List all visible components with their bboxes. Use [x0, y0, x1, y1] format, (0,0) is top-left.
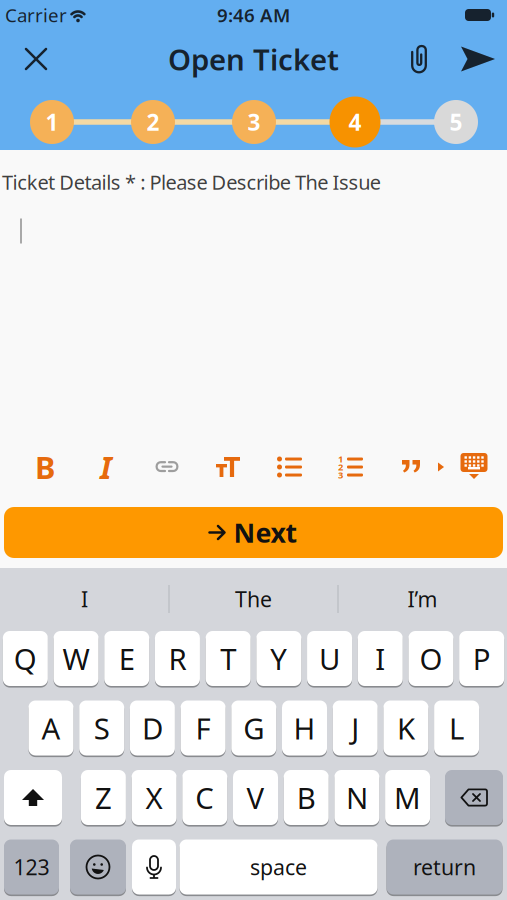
button[interactable]: I: [4, 576, 164, 622]
staticText: Z: [95, 778, 112, 817]
button[interactable]: The: [173, 576, 333, 622]
button[interactable]: Send: [456, 37, 500, 81]
staticText: T: [220, 639, 236, 678]
button[interactable]: Emoji: [70, 839, 126, 895]
staticText: C: [195, 778, 214, 817]
button[interactable]: Attach file: [399, 37, 439, 81]
staticText: K: [397, 708, 415, 747]
staticText: I: [81, 585, 88, 613]
button[interactable]: Dictate: [132, 839, 176, 895]
button[interactable]: X: [132, 769, 177, 825]
button[interactable]: D: [130, 700, 175, 756]
staticText: A: [41, 708, 60, 747]
staticText: Open Ticket: [168, 39, 339, 78]
staticText: H: [293, 708, 315, 747]
button[interactable]: Q: [3, 630, 48, 686]
button[interactable]: O: [408, 630, 453, 686]
staticText: I: [100, 447, 112, 487]
staticText: V: [246, 778, 264, 817]
staticText: I’m: [407, 585, 437, 613]
staticText: S: [94, 708, 110, 747]
button[interactable]: C: [182, 769, 227, 825]
button[interactable]: Insert link: [145, 447, 189, 487]
staticText: B: [35, 447, 55, 487]
button[interactable]: G: [231, 700, 276, 756]
staticText: 3: [247, 107, 260, 137]
staticText: 2: [338, 461, 343, 473]
staticText: P: [473, 639, 491, 678]
staticText: 5: [449, 107, 462, 137]
staticText: Q: [14, 639, 37, 678]
button[interactable]: Delete: [445, 769, 503, 825]
staticText: 1: [338, 453, 343, 465]
staticText: E: [119, 639, 135, 678]
staticText: 123: [13, 853, 49, 881]
button[interactable]: I: [358, 630, 403, 686]
button[interactable]: J: [333, 700, 378, 756]
staticText: I: [375, 639, 385, 678]
staticText: 9:46 AM: [217, 3, 290, 27]
staticText: Ticket Details * : Please Describe The I…: [2, 169, 381, 195]
button[interactable]: Text size: [206, 447, 250, 487]
button[interactable]: N: [334, 769, 379, 825]
button[interactable]: Hide keyboard: [454, 446, 494, 486]
button[interactable]: L: [434, 700, 479, 756]
staticText: N: [346, 778, 368, 817]
button[interactable]: space: [179, 839, 377, 895]
staticText: return: [413, 853, 476, 881]
button[interactable]: A: [28, 700, 73, 756]
button[interactable]: Y: [256, 630, 301, 686]
button[interactable]: Numbers: [4, 839, 59, 895]
staticText: space: [250, 853, 307, 881]
button[interactable]: S: [79, 700, 124, 756]
staticText: R: [168, 639, 186, 678]
staticText: J: [351, 708, 359, 747]
staticText: U: [319, 639, 340, 678]
button[interactable]: Close: [14, 37, 58, 81]
button[interactable]: Block quote: [394, 447, 430, 487]
button[interactable]: Italic: [84, 447, 128, 487]
staticText: F: [196, 708, 211, 747]
staticText: 1: [45, 107, 58, 137]
staticText: Next: [233, 515, 297, 550]
staticText: Y: [270, 639, 287, 678]
staticText: X: [146, 778, 163, 817]
button[interactable]: V: [233, 769, 278, 825]
button[interactable]: F: [181, 700, 226, 756]
staticText: O: [419, 639, 442, 678]
button[interactable]: Z: [81, 769, 126, 825]
button[interactable]: return: [386, 839, 502, 895]
button[interactable]: I’m: [342, 576, 502, 622]
button[interactable]: H: [282, 700, 327, 756]
button[interactable]: W: [54, 630, 99, 686]
staticText: G: [243, 708, 264, 747]
button[interactable]: Bold: [23, 447, 67, 487]
staticText: The: [235, 585, 272, 613]
button[interactable]: P: [459, 630, 504, 686]
staticText: D: [142, 708, 163, 747]
button[interactable]: K: [383, 700, 428, 756]
button[interactable]: B: [284, 769, 329, 825]
button[interactable]: Bulleted list: [268, 447, 312, 487]
staticText: M: [394, 778, 421, 817]
button[interactable]: Shift: [4, 769, 62, 825]
staticText: B: [297, 778, 316, 817]
button[interactable]: Numbered list: [329, 447, 373, 487]
button[interactable]: M: [385, 769, 430, 825]
staticText: 4: [348, 107, 361, 137]
button[interactable]: R: [155, 630, 200, 686]
staticText: 2: [146, 107, 159, 137]
button[interactable]: U: [307, 630, 352, 686]
staticText: Carrier: [5, 3, 67, 27]
staticText: L: [449, 708, 464, 747]
button[interactable]: T: [206, 630, 251, 686]
staticText: W: [63, 639, 90, 678]
button[interactable]: Next: [4, 507, 503, 558]
staticText: 3: [338, 469, 343, 481]
button[interactable]: E: [104, 630, 149, 686]
